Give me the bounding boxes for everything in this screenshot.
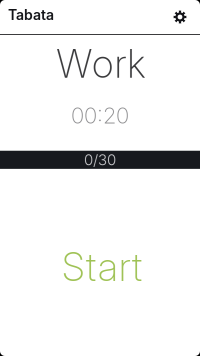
staticText: 0/30 <box>84 151 116 169</box>
button[interactable]: Start <box>0 244 200 290</box>
button[interactable]: Settings <box>167 4 193 30</box>
staticText: Tabata <box>8 6 54 23</box>
staticText: Start <box>62 243 142 290</box>
staticText: 00:20 <box>71 102 129 129</box>
staticText: Work <box>57 40 145 87</box>
